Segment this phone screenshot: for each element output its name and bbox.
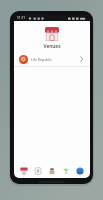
button[interactable]: [45, 164, 59, 177]
button[interactable]: [16, 164, 31, 177]
staticText: 11:11: [17, 16, 26, 20]
staticText: Venues: [14, 43, 90, 50]
button[interactable]: Life Republic: [14, 52, 90, 66]
button[interactable]: [31, 164, 45, 177]
button[interactable]: [73, 164, 87, 177]
staticText: Life Republic: [31, 57, 52, 62]
button[interactable]: [59, 164, 73, 177]
